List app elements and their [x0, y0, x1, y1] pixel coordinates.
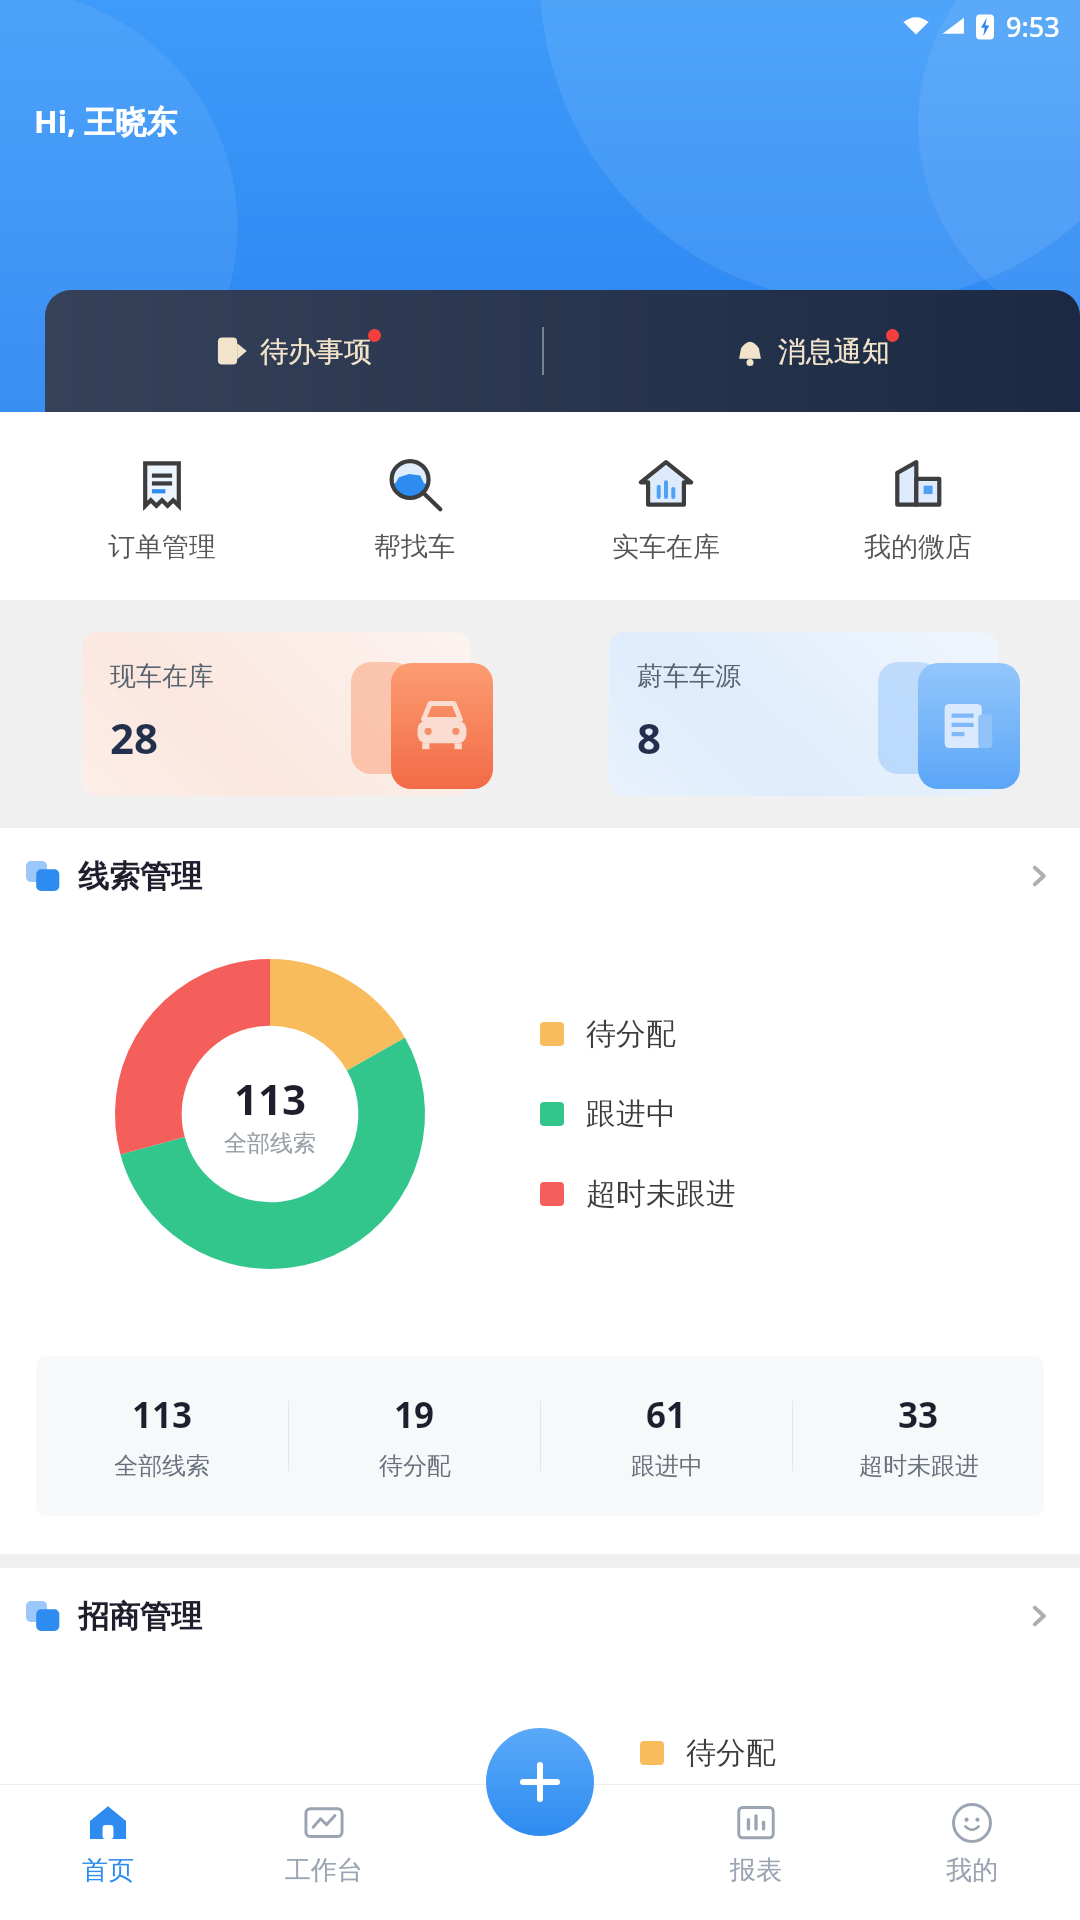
button[interactable]: 我的微店: [828, 456, 1008, 564]
button[interactable]: 实车在库: [576, 456, 756, 564]
button[interactable]: 待分配: [540, 1015, 676, 1053]
staticText: 待分配: [686, 1734, 776, 1772]
button[interactable]: 超时未跟进: [540, 1175, 736, 1213]
staticText: 蔚车车源: [637, 660, 741, 693]
staticText: 我的微店: [864, 530, 972, 564]
staticText: 订单管理: [108, 530, 216, 564]
staticText: 现车在库: [110, 660, 214, 693]
staticText: 报表: [730, 1854, 782, 1887]
button[interactable]: 线索管理: [0, 828, 1080, 924]
button[interactable]: 报表: [648, 1784, 864, 1920]
staticText: 61: [646, 1391, 687, 1439]
button[interactable]: 待办事项: [45, 290, 542, 412]
staticText: 首页: [82, 1854, 134, 1887]
button[interactable]: 跟进中: [540, 1095, 676, 1133]
staticText: Hi, 王晓东: [34, 100, 177, 142]
staticText: 跟进中: [586, 1095, 676, 1133]
staticText: 待分配: [586, 1015, 676, 1053]
button[interactable]: 帮找车: [324, 456, 504, 564]
button[interactable]: Add: [486, 1728, 594, 1836]
staticText: 工作台: [285, 1854, 363, 1887]
staticText: 跟进中: [631, 1451, 703, 1481]
staticText: 9:53: [1006, 8, 1060, 45]
button[interactable]: 首页: [0, 1784, 216, 1920]
staticText: 消息通知: [778, 334, 890, 369]
staticText: 19: [394, 1391, 435, 1439]
button[interactable]: 113: [36, 1391, 288, 1481]
button[interactable]: 工作台: [216, 1784, 432, 1920]
staticText: 待办事项: [260, 334, 372, 369]
staticText: 超时未跟进: [586, 1175, 736, 1213]
button[interactable]: 待分配: [640, 1734, 776, 1772]
staticText: 8: [637, 709, 662, 766]
button[interactable]: 蔚车车源: [609, 632, 998, 796]
staticText: 待分配: [379, 1451, 451, 1481]
other: 招商管理: [1024, 1601, 1054, 1631]
staticText: 线索管理: [78, 857, 202, 896]
staticText: 我的: [946, 1854, 998, 1887]
staticText: 全部线索: [114, 1451, 210, 1481]
staticText: 实车在库: [612, 530, 720, 564]
staticText: 全部线索: [224, 1129, 316, 1158]
button[interactable]: 61: [541, 1391, 792, 1481]
staticText: 超时未跟进: [859, 1451, 979, 1481]
button[interactable]: 19: [289, 1391, 540, 1481]
button[interactable]: 33: [793, 1391, 1044, 1481]
staticText: 招商管理: [78, 1597, 202, 1636]
button[interactable]: 消息通知: [544, 290, 1080, 412]
button[interactable]: 我的: [864, 1784, 1080, 1920]
button[interactable]: 现车在库: [82, 632, 471, 796]
other: 线索管理: [1024, 861, 1054, 891]
button[interactable]: 订单管理: [72, 456, 252, 564]
staticText: 33: [898, 1391, 939, 1439]
staticText: 帮找车: [374, 530, 455, 564]
staticText: 113: [234, 1070, 307, 1127]
button[interactable]: 招商管理: [0, 1568, 1080, 1664]
staticText: 113: [132, 1391, 193, 1439]
staticText: 28: [110, 709, 159, 766]
